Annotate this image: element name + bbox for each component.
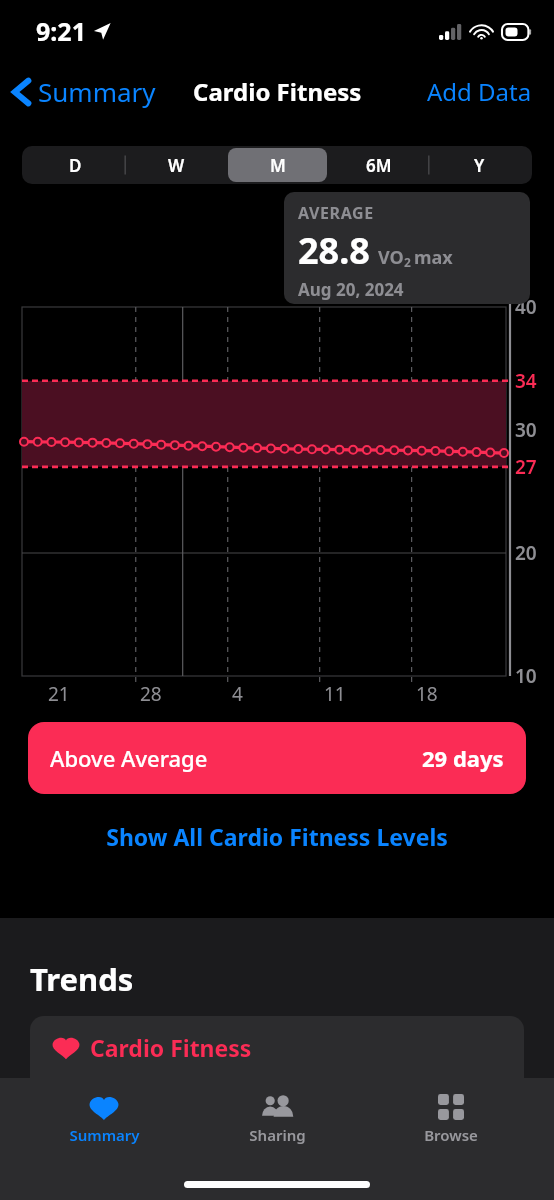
staticText: 34: [515, 368, 537, 394]
button[interactable]: Summary: [34, 1088, 174, 1149]
staticText: 20: [515, 540, 537, 566]
other: Back: [12, 77, 32, 107]
staticText: Browse: [424, 1125, 478, 1145]
staticText: Summary: [69, 1125, 140, 1145]
staticText: Cardio Fitness: [193, 75, 362, 108]
staticText: 6M: [366, 154, 392, 177]
staticText: Above Average: [50, 743, 208, 773]
button[interactable]: Y: [430, 148, 529, 182]
staticText: 11: [324, 681, 346, 707]
staticText: VO: [378, 245, 404, 270]
staticText: 2: [404, 254, 411, 270]
staticText: 28: [140, 681, 162, 707]
staticText: 21: [48, 681, 70, 707]
button[interactable]: Show All Cardio Fitness Levels: [0, 821, 554, 852]
button[interactable]: Back: [12, 74, 156, 109]
staticText: Summary: [38, 74, 156, 109]
button[interactable]: Above Average: [28, 722, 526, 794]
staticText: 9:21: [36, 14, 86, 48]
button[interactable]: Add Data: [427, 75, 532, 108]
button[interactable]: D: [25, 148, 125, 182]
staticText: M: [270, 154, 286, 177]
staticText: 40: [515, 294, 537, 320]
staticText: 28.8: [298, 226, 370, 275]
button[interactable]: AVERAGE: [284, 192, 530, 304]
staticText: 29 days: [422, 743, 504, 773]
button[interactable]: 6M: [329, 148, 428, 182]
staticText: 10: [515, 663, 537, 689]
staticText: Aug 20, 2024: [298, 278, 404, 301]
staticText: Add Data: [427, 75, 532, 108]
staticText: Trends: [30, 958, 134, 1000]
button[interactable]: Cardio Fitness: [30, 1016, 524, 1146]
staticText: 27: [515, 454, 537, 480]
staticText: W: [168, 154, 185, 177]
staticText: 4: [232, 681, 243, 707]
button[interactable]: M: [228, 148, 327, 182]
staticText: AVERAGE: [298, 202, 374, 224]
button[interactable]: Sharing: [207, 1088, 347, 1149]
staticText: max: [414, 245, 453, 270]
staticText: Sharing: [249, 1125, 306, 1145]
staticText: D: [69, 154, 82, 177]
staticText: Y: [474, 154, 485, 177]
button[interactable]: W: [127, 148, 226, 182]
staticText: Cardio Fitness: [90, 1032, 252, 1063]
staticText: 18: [416, 681, 438, 707]
button[interactable]: Browse: [381, 1088, 521, 1149]
staticText: 30: [515, 417, 537, 443]
